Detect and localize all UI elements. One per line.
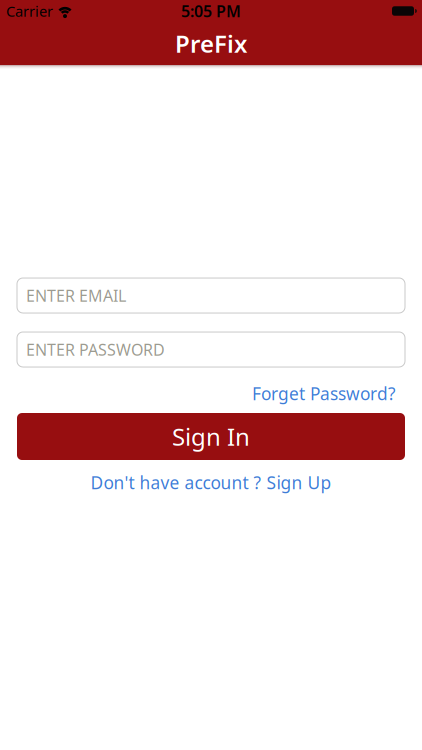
staticText: Don't have account ? Sign Up bbox=[90, 471, 331, 494]
staticText: Carrier bbox=[6, 1, 53, 21]
staticText: PreFix bbox=[175, 28, 247, 59]
staticText: Sign In bbox=[172, 421, 250, 452]
textField[interactable]: ENTER EMAIL bbox=[26, 285, 405, 306]
button[interactable]: Don't have account ? Sign Up bbox=[90, 471, 331, 494]
staticText: 5:05 PM bbox=[181, 0, 241, 22]
button[interactable]: Forget Password? bbox=[252, 382, 396, 405]
staticText: ENTER EMAIL bbox=[26, 285, 126, 306]
textField[interactable]: ENTER PASSWORD bbox=[26, 339, 405, 360]
staticText: Forget Password? bbox=[252, 382, 396, 405]
staticText: ENTER PASSWORD bbox=[26, 339, 165, 360]
button[interactable]: Sign In bbox=[17, 413, 405, 460]
